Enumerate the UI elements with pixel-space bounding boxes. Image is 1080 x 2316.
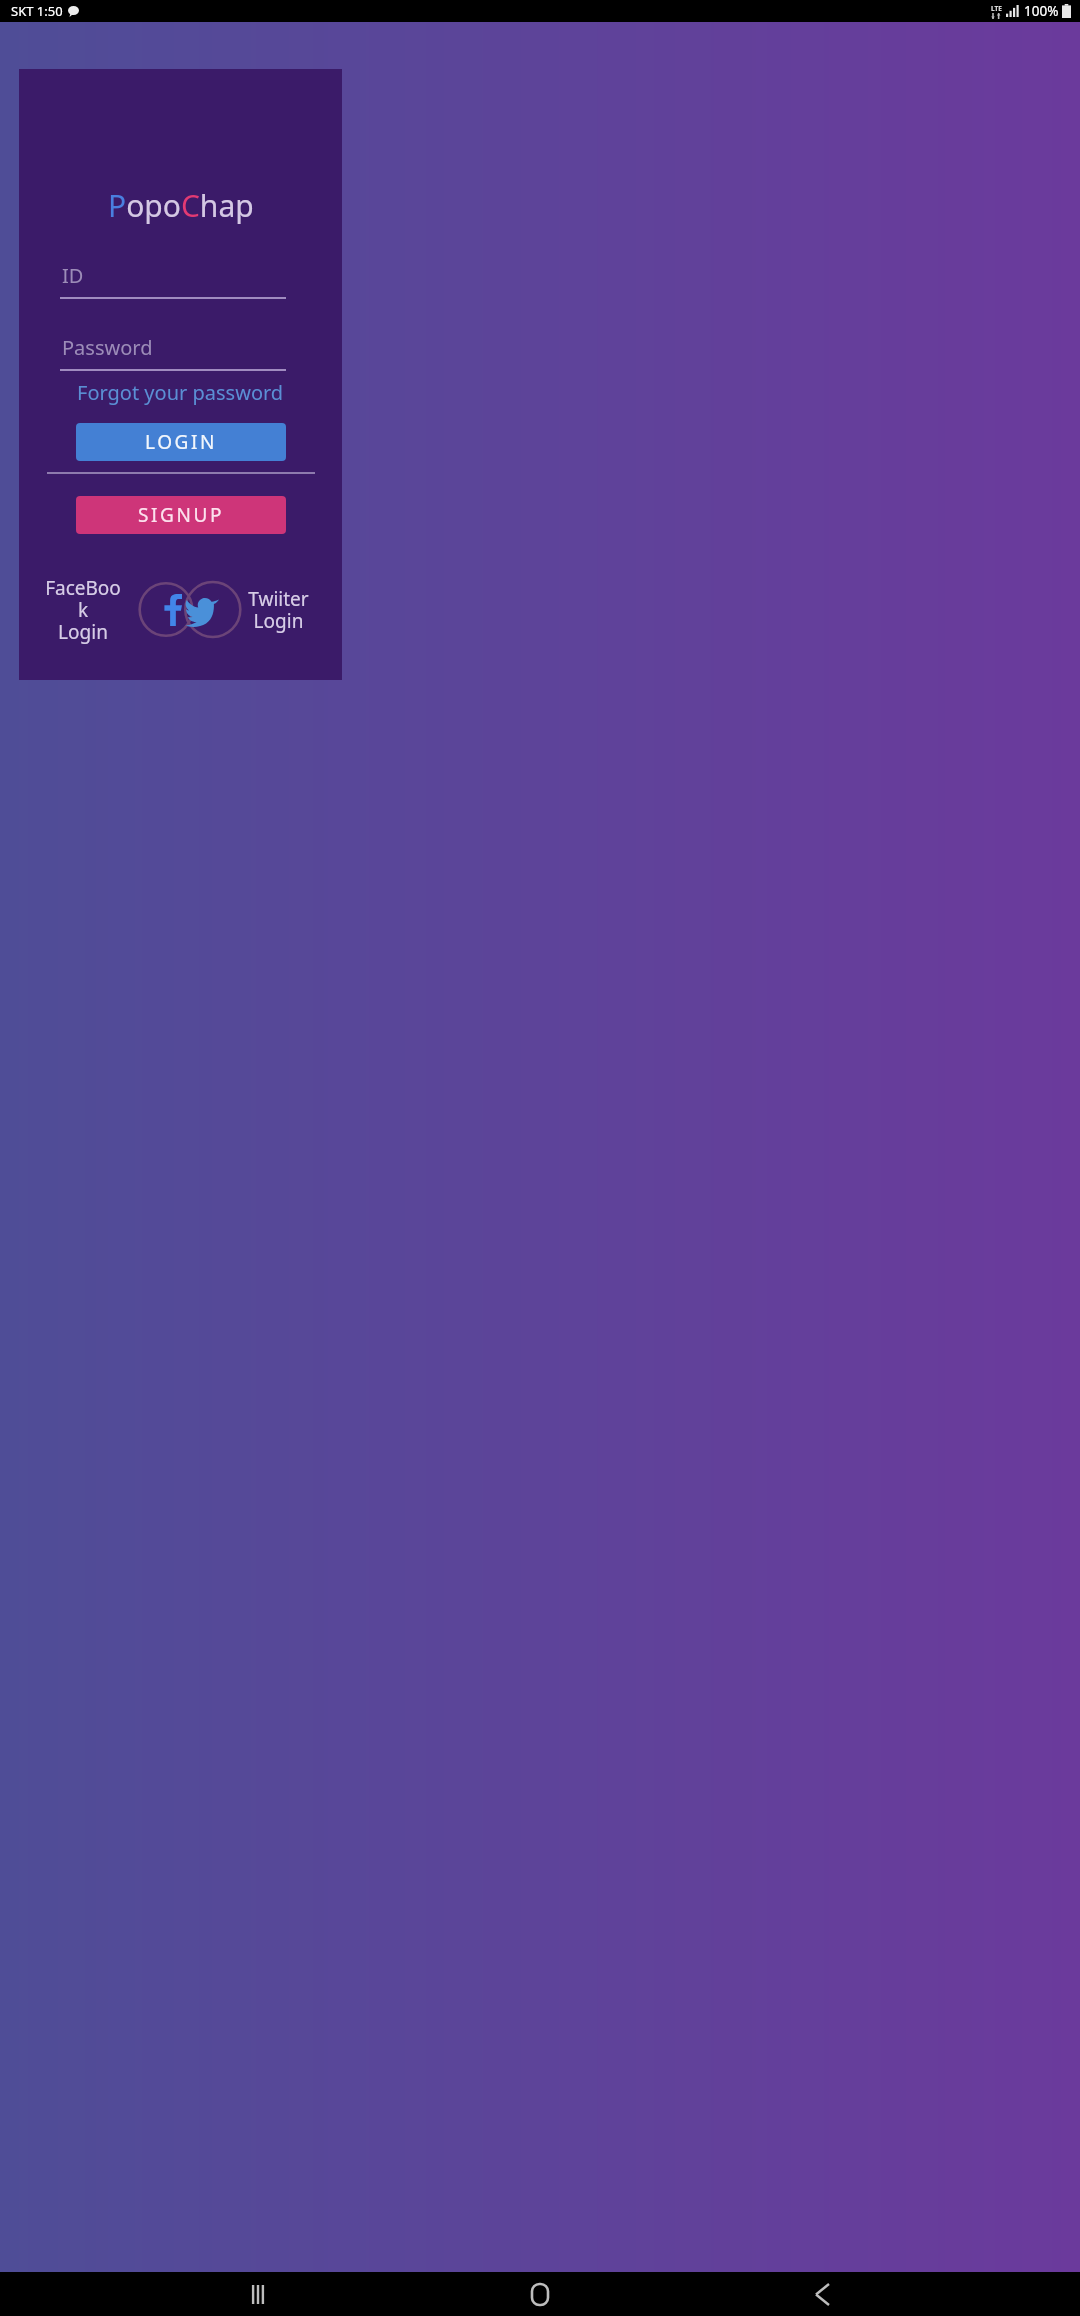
button[interactable]: FaceBook Login bbox=[43, 575, 123, 645]
button[interactable]: Recents bbox=[234, 2272, 282, 2316]
staticText: SKT 1:50 bbox=[11, 2, 63, 20]
staticText: PopoChap bbox=[108, 185, 254, 226]
staticText: LTE bbox=[991, 4, 1002, 13]
button[interactable]: Forgot your password bbox=[19, 379, 342, 406]
button[interactable]: Twitter Login bbox=[180, 588, 224, 632]
staticText: 100% bbox=[1024, 2, 1059, 20]
button[interactable]: ID bbox=[19, 253, 342, 297]
staticText: LOGIN bbox=[145, 429, 218, 455]
staticText: Password bbox=[62, 334, 153, 361]
button[interactable]: Password bbox=[19, 325, 342, 369]
staticText: FaceBook Login bbox=[43, 575, 123, 645]
button[interactable]: Twiiter Login bbox=[238, 586, 318, 634]
button[interactable]: Home bbox=[516, 2272, 564, 2316]
button[interactable]: Back bbox=[798, 2272, 846, 2316]
staticText: Forgot your password bbox=[77, 379, 284, 406]
staticText: ID bbox=[62, 262, 84, 289]
staticText: Twiiter Login bbox=[248, 586, 309, 634]
staticText: SIGNUP bbox=[138, 502, 225, 528]
button[interactable]: Facebook Login bbox=[151, 590, 191, 630]
button[interactable]: LOGIN bbox=[76, 423, 286, 461]
button[interactable]: SIGNUP bbox=[76, 496, 286, 534]
